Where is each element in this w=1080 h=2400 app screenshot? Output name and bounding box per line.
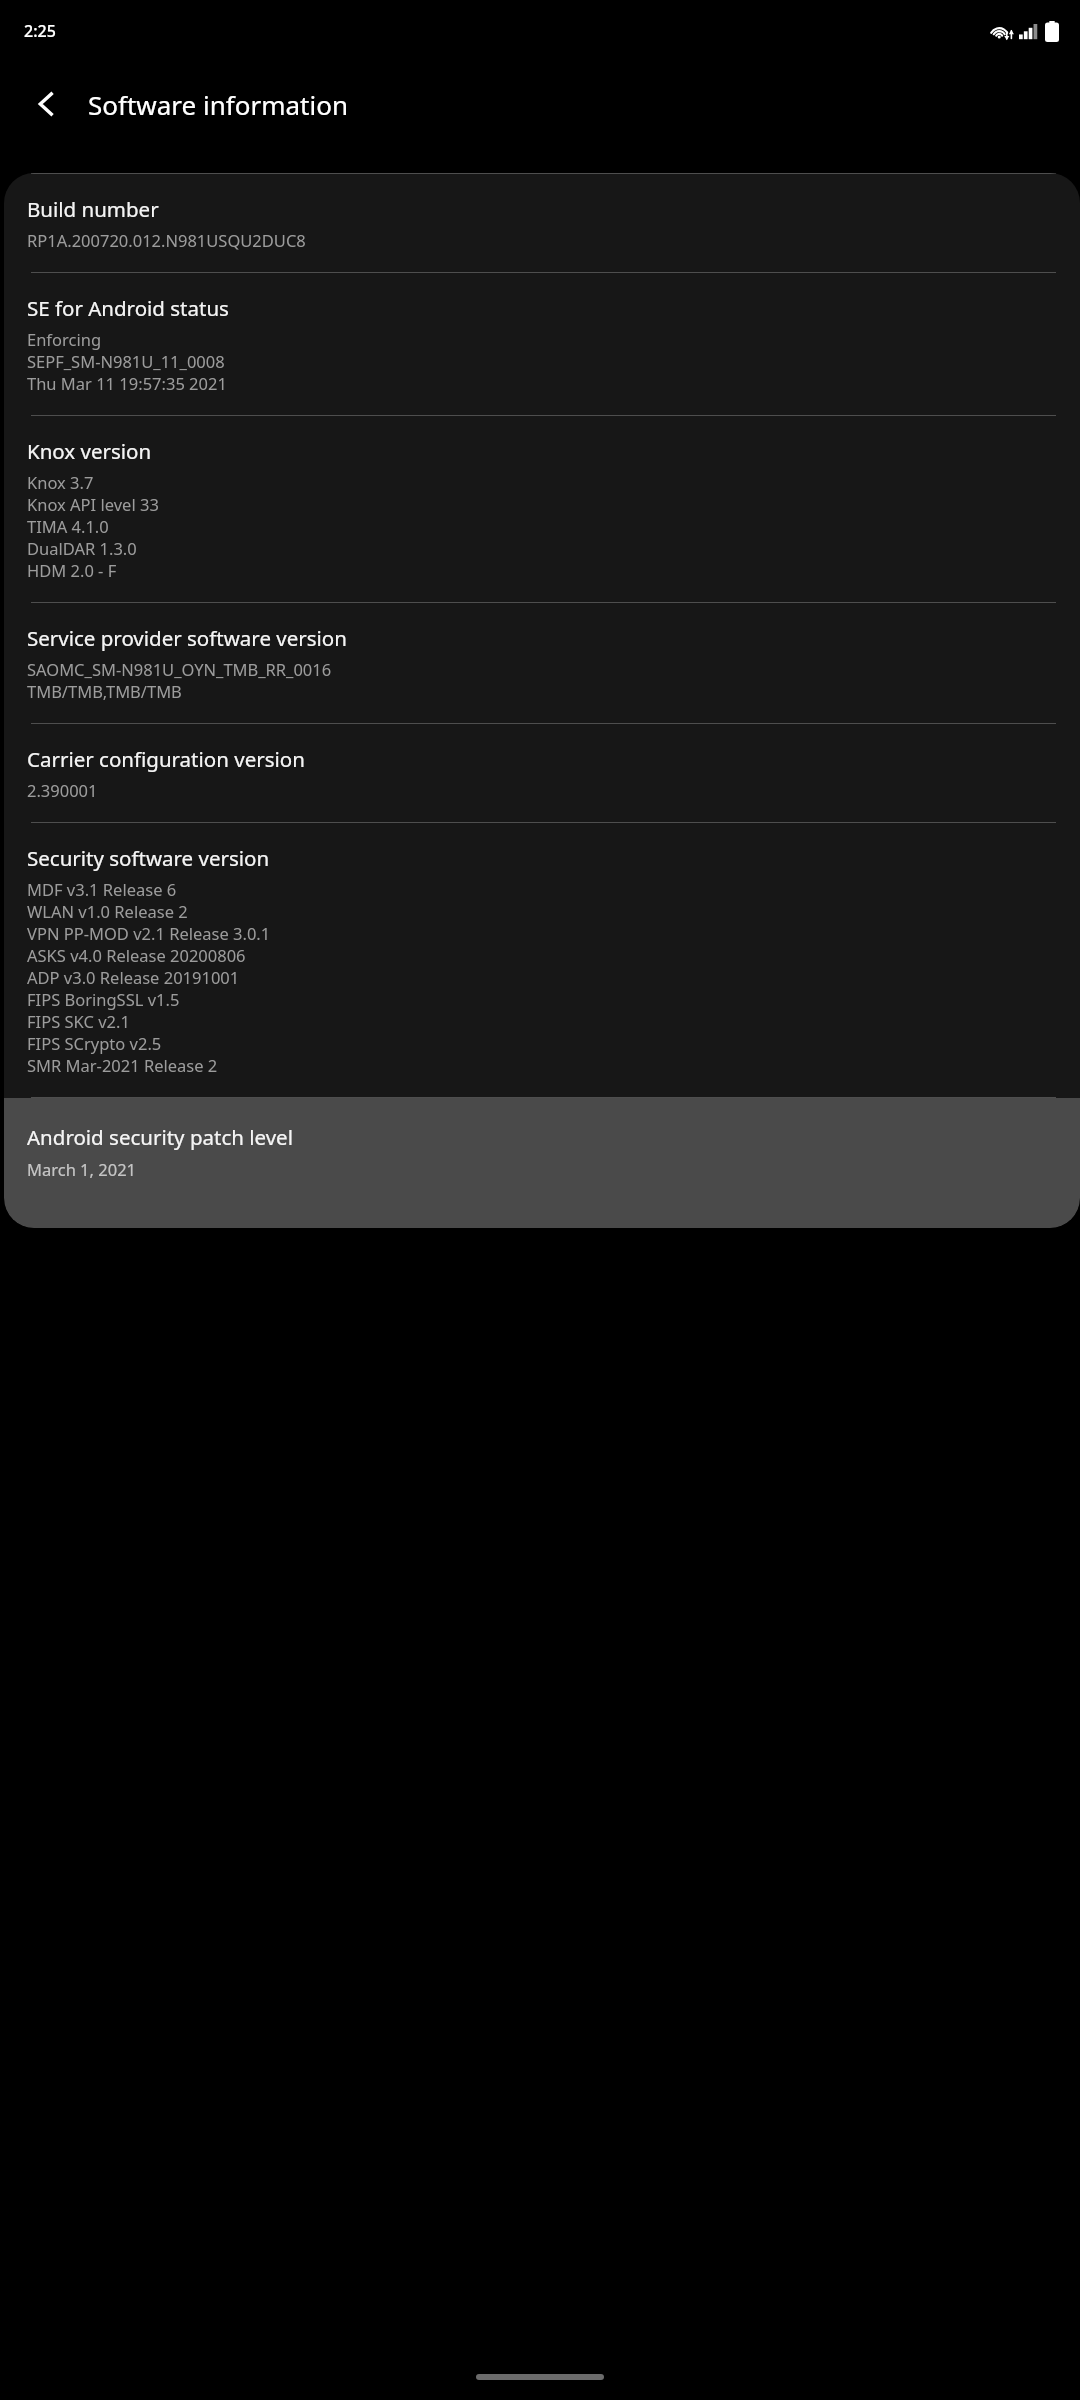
button[interactable]: SE for Android status [4,273,1080,415]
staticText: FIPS SKC v2.1 [27,1010,130,1032]
button[interactable]: Security software version [4,823,1080,1097]
staticText: March 1, 2021 [27,1158,137,1180]
staticText: FIPS BoringSSL v1.5 [27,988,180,1010]
staticText: SAOMC_SM-N981U_OYN_TMB_RR_0016 [27,658,332,680]
staticText: Build number [27,195,159,223]
staticText: ASKS v4.0 Release 20200806 [27,944,246,966]
staticText: Security software version [27,844,270,872]
button[interactable]: Android security patch level [4,1098,1080,1228]
staticText: ADP v3.0 Release 20191001 [27,966,240,988]
staticText: SMR Mar-2021 Release 2 [27,1054,218,1076]
staticText: SEPF_SM-N981U_11_0008 [27,350,225,372]
staticText: TIMA 4.1.0 [27,515,109,537]
staticText: Android security patch level [27,1123,293,1151]
staticText: WLAN v1.0 Release 2 [27,900,188,922]
staticText: Thu Mar 11 19:57:35 2021 [27,372,227,394]
staticText: Knox version [27,437,152,465]
button[interactable]: Back [18,75,76,133]
staticText: 2:25 [24,20,56,42]
staticText: MDF v3.1 Release 6 [27,878,177,900]
button[interactable]: Service provider software version [4,603,1080,723]
staticText: 2.390001 [27,779,98,801]
button[interactable]: Build number [4,174,1080,272]
button[interactable]: Carrier configuration version [4,724,1080,822]
staticText: HDM 2.0 - F [27,559,117,581]
staticText: RP1A.200720.012.N981USQU2DUC8 [27,229,306,251]
staticText: Carrier configuration version [27,745,305,773]
staticText: Knox API level 33 [27,493,159,515]
staticText: SE for Android status [27,294,229,322]
staticText: VPN PP-MOD v2.1 Release 3.0.1 [27,922,271,944]
staticText: TMB/TMB,TMB/TMB [27,680,182,702]
staticText: FIPS SCrypto v2.5 [27,1032,162,1054]
staticText: Software information [88,87,348,122]
staticText: Service provider software version [27,624,347,652]
button[interactable]: Knox version [4,416,1080,602]
staticText: DualDAR 1.3.0 [27,537,137,559]
staticText: Enforcing [27,328,102,350]
staticText: Knox 3.7 [27,471,94,493]
